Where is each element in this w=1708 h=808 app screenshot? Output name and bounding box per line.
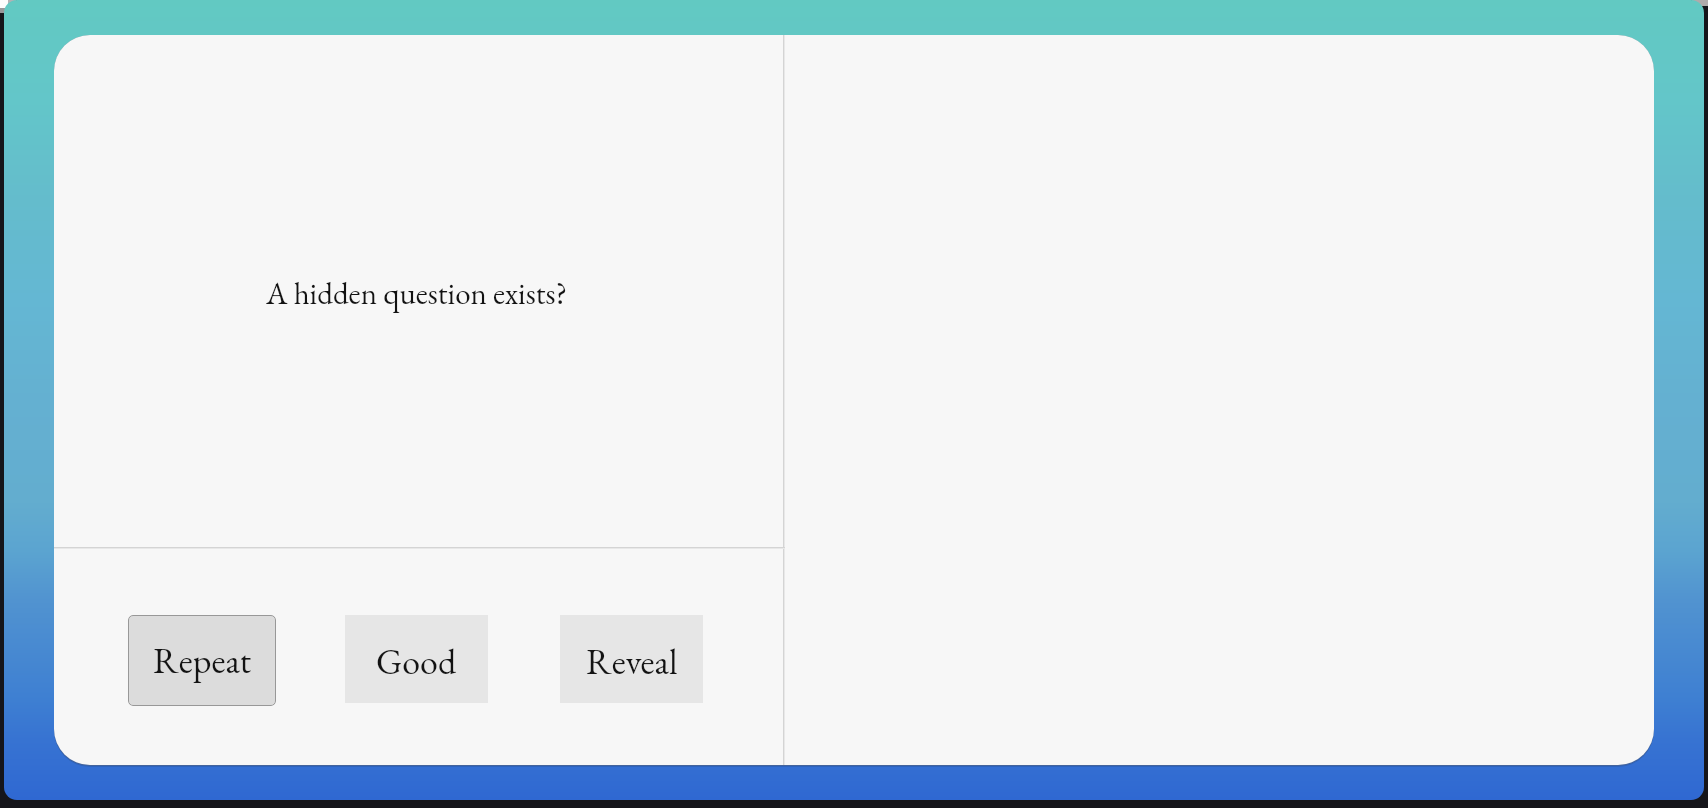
staticText: Repeat [153,637,252,684]
button[interactable]: Flash card answer [784,35,1654,765]
button[interactable]: Good [345,615,488,703]
button[interactable]: Repeat [128,615,276,706]
button[interactable]: Reveal [560,615,703,703]
staticText: Reveal [586,638,678,685]
button[interactable]: Flash card question [54,35,783,547]
staticText: Good [376,638,457,685]
staticText: A hidden question exists? [266,273,568,313]
